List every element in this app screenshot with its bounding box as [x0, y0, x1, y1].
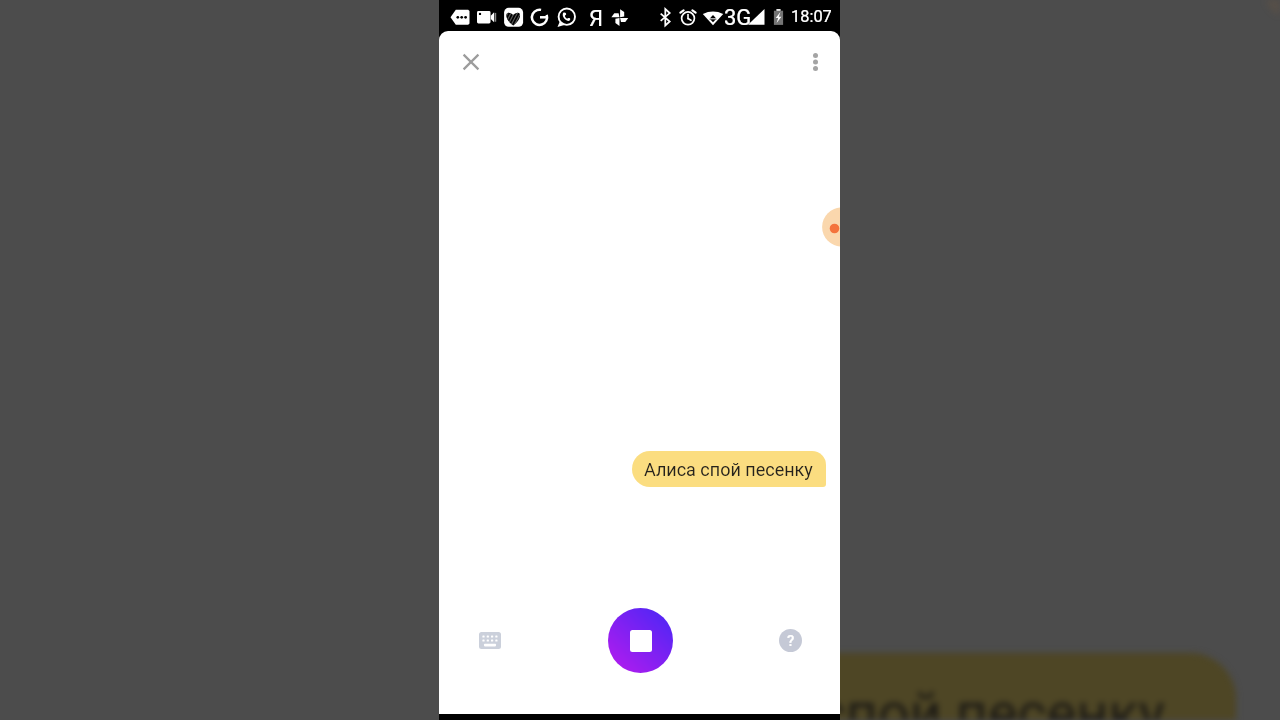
- button[interactable]: Keyboard: [474, 624, 506, 656]
- button[interactable]: Help: [774, 624, 806, 656]
- staticText: Я: [589, 6, 604, 32]
- staticText: 18:07: [791, 7, 832, 26]
- staticText: 3G: [724, 5, 752, 31]
- button[interactable]: Close: [455, 46, 487, 78]
- button[interactable]: Stop listening: [608, 608, 673, 673]
- button[interactable]: Алиса спой песенку: [632, 451, 826, 487]
- staticText: Алиса спой песенку: [642, 680, 1165, 720]
- staticText: ?: [787, 632, 795, 650]
- button[interactable]: More options: [799, 46, 831, 78]
- staticText: Алиса спой песенку: [644, 459, 813, 480]
